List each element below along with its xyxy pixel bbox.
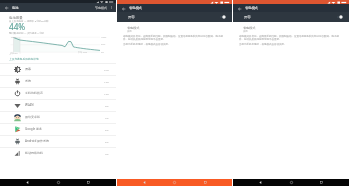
staticText: 省电模式 (127, 26, 140, 30)
button[interactable]: Home (55, 179, 62, 186)
button[interactable]: More options (108, 4, 115, 11)
staticText: 预计剩余时间 — 大约还有 7 小时 (9, 31, 44, 34)
staticText: 13% (104, 92, 109, 95)
staticText: 开启 (244, 15, 251, 19)
staticText: 上午7:30 (9, 52, 18, 55)
staticText: 当您为手机充电时，省电模式会自动关闭。 (239, 43, 287, 46)
staticText: 电池 (12, 6, 19, 10)
button[interactable]: Back (3, 4, 10, 11)
staticText: 下午 4:02 (78, 51, 87, 54)
staticText: 自上次充电后 — 使用中 8小时32分钟 (9, 19, 49, 22)
staticText: 关闭 (243, 30, 248, 33)
staticText: 7% (105, 116, 109, 119)
staticText: 屏幕 (25, 67, 31, 71)
staticText: 关闭 (127, 30, 132, 33)
staticText: 节电模式 (95, 6, 107, 10)
staticText: 当您为手机充电时，省电模式会自动关闭。 (123, 43, 171, 46)
button[interactable]: Back (257, 179, 264, 186)
staticText: 开启 (128, 15, 135, 19)
staticText: WLAN (25, 103, 34, 107)
button[interactable]: 开启 (233, 12, 349, 22)
button[interactable]: Back (141, 179, 148, 186)
staticText: 14% (104, 80, 109, 83)
button[interactable]: Back (24, 179, 31, 186)
button[interactable]: Home (288, 179, 295, 186)
button[interactable]: Back (236, 5, 243, 12)
button[interactable]: 系统 (0, 75, 116, 87)
staticText: 省电模式 (245, 6, 258, 10)
button[interactable]: Recents (85, 179, 92, 186)
staticText: 上次充满电后的耗电详情 (9, 57, 39, 60)
staticText: 4% (105, 152, 109, 155)
button[interactable]: Android 操作系统 (0, 135, 116, 147)
staticText: 50% (101, 43, 106, 46)
staticText: 手机待机状态 (25, 91, 43, 95)
button[interactable]: 开启 (117, 12, 232, 22)
button[interactable]: Recents (202, 179, 209, 186)
staticText: 微信安卓版 (25, 115, 40, 119)
staticText: 6% (105, 128, 109, 131)
staticText: 省电模式开启后，会降低手机性能，并限制振动、位置信息服务和大部分后台数据。电子邮… (123, 35, 224, 41)
staticText: Google 服务 (25, 127, 42, 131)
button[interactable]: Google 服务 (0, 123, 116, 135)
staticText: 移动网络待机 (25, 151, 43, 155)
staticText: 44% (9, 21, 26, 32)
staticText: 100% (101, 36, 107, 39)
staticText: 电池用量 (9, 16, 23, 20)
staticText: 100% (11, 36, 17, 39)
button[interactable]: 移动网络待机 (0, 147, 116, 159)
button[interactable]: 手机待机状态 (0, 87, 116, 99)
staticText: 省电模式 (243, 26, 256, 30)
button[interactable]: 屏幕 (0, 63, 116, 75)
button[interactable]: Back (120, 5, 127, 12)
staticText: 9% (105, 104, 109, 107)
staticText: Android 操作系统 (25, 139, 50, 143)
staticText: 31% (104, 68, 109, 71)
staticText: 省电模式 (129, 6, 142, 10)
staticText: 系统 (25, 79, 31, 83)
staticText: 5% (105, 140, 109, 143)
staticText: 省电模式开启后，会降低手机性能，并限制振动、位置信息服务和大部分后台数据。电子邮… (239, 35, 341, 41)
staticText: 0% (101, 51, 104, 54)
button[interactable]: WLAN (0, 99, 116, 111)
button[interactable]: Home (171, 179, 178, 186)
button[interactable]: Recents (318, 179, 325, 186)
button[interactable]: 微信安卓版 (0, 111, 116, 123)
